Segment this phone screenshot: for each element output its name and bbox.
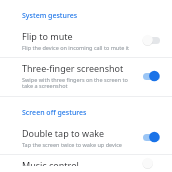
staticText: Three-finger screenshot [22,62,124,74]
staticText: Flip to mute [22,30,73,42]
button[interactable]: Double tap to wake [0,123,172,154]
staticText: Music control [22,159,79,166]
button[interactable]: Double tap to wake toggle [136,126,166,148]
staticText: Swipe with three fingers on the screen t… [22,76,132,90]
staticText: Tap the screen twice to wake up device [22,141,122,148]
button[interactable]: Three-finger screenshot [0,58,172,96]
staticText: Screen off gestures [22,108,87,118]
staticText: System gestures [22,11,78,21]
button[interactable]: Music control [0,155,172,172]
button[interactable]: Three-finger screenshot toggle [136,65,166,87]
button[interactable]: Flip to mute [0,26,172,57]
staticText: Double tap to wake [22,127,105,139]
button[interactable]: Flip to mute toggle [136,29,166,51]
staticText: Flip the device on incoming call to mute… [22,44,130,51]
